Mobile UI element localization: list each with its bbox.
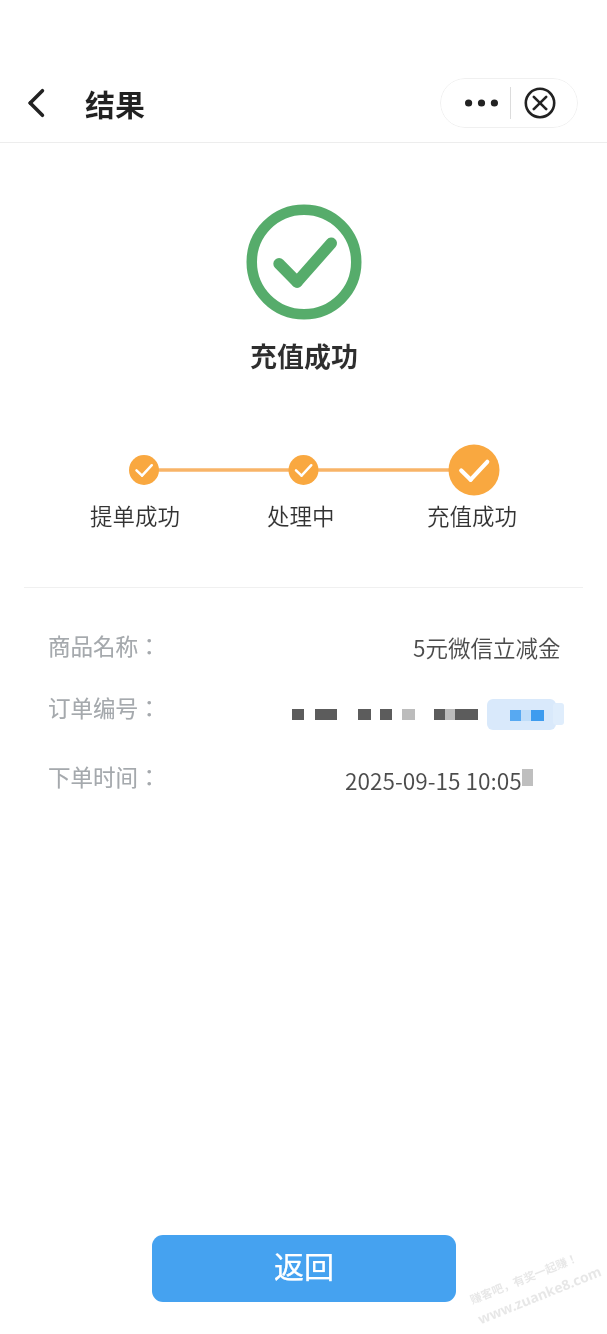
button[interactable] (0, 681, 607, 741)
staticText: www.zuanke8.com (475, 1261, 604, 1328)
button[interactable] (0, 617, 607, 677)
button[interactable] (0, 750, 607, 810)
staticText: 2025-09-15 10:05 (345, 764, 522, 797)
button[interactable]: Back (8, 74, 66, 132)
staticText: 5元微信立减金 (413, 631, 561, 664)
staticText: 提单成功 (90, 499, 181, 532)
button[interactable]: 充值成功 (402, 499, 542, 533)
button[interactable]: More options (446, 78, 516, 128)
button[interactable]: 返回 (152, 1235, 456, 1302)
button[interactable]: Close (506, 78, 574, 128)
staticText: 订单编号： (48, 691, 161, 724)
button[interactable]: 提单成功 (65, 499, 205, 533)
staticText: 下单时间： (48, 760, 161, 793)
staticText: 处理中 (267, 499, 335, 532)
staticText: 结果 (85, 81, 145, 124)
staticText: 赚客吧，有奖一起赚！ (467, 1249, 580, 1308)
staticText: 充值成功 (427, 499, 518, 532)
staticText: 商品名称： (48, 629, 161, 662)
staticText: 充值成功 (250, 336, 358, 375)
button[interactable]: 处理中 (231, 499, 371, 533)
staticText: 返回 (274, 1243, 334, 1286)
